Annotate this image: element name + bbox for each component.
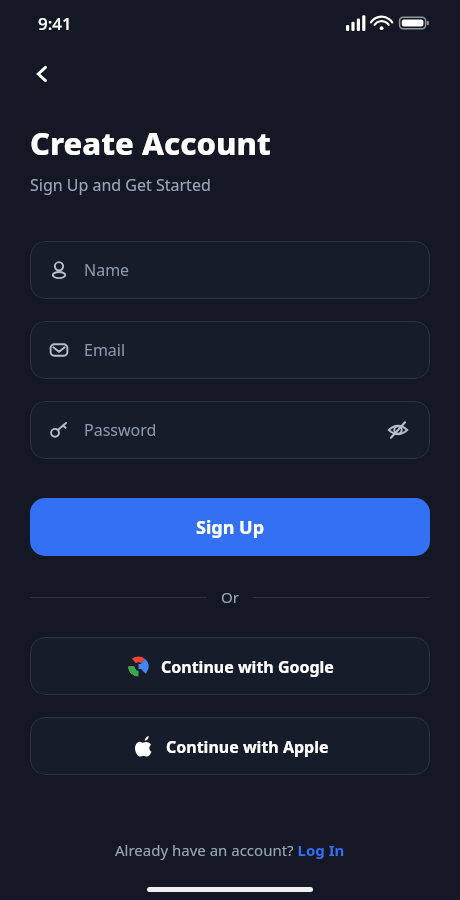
staticText: 9:41 xyxy=(38,12,72,35)
staticText: Email xyxy=(84,339,126,361)
button[interactable]: Already have an account? Log In xyxy=(109,836,351,864)
button[interactable]: Continue with Google xyxy=(30,637,430,695)
staticText: Password xyxy=(84,419,157,441)
staticText: Create Account xyxy=(30,122,271,164)
button[interactable]: Email xyxy=(30,321,430,379)
button[interactable]: Sign Up xyxy=(30,498,430,556)
staticText: Sign Up and Get Started xyxy=(30,174,211,196)
staticText: Already have an account? Log In xyxy=(115,840,345,860)
staticText: Continue with Google xyxy=(161,656,334,678)
button[interactable]: Continue with Apple xyxy=(30,717,430,775)
button[interactable]: Password xyxy=(30,401,430,459)
button[interactable]: Show password xyxy=(384,416,412,444)
button[interactable]: Name xyxy=(30,241,430,299)
staticText: Continue with Apple xyxy=(166,736,329,758)
staticText: Or xyxy=(221,587,239,607)
staticText: Name xyxy=(84,259,130,281)
staticText: Sign Up xyxy=(196,515,265,540)
button[interactable]: Back xyxy=(22,54,62,94)
